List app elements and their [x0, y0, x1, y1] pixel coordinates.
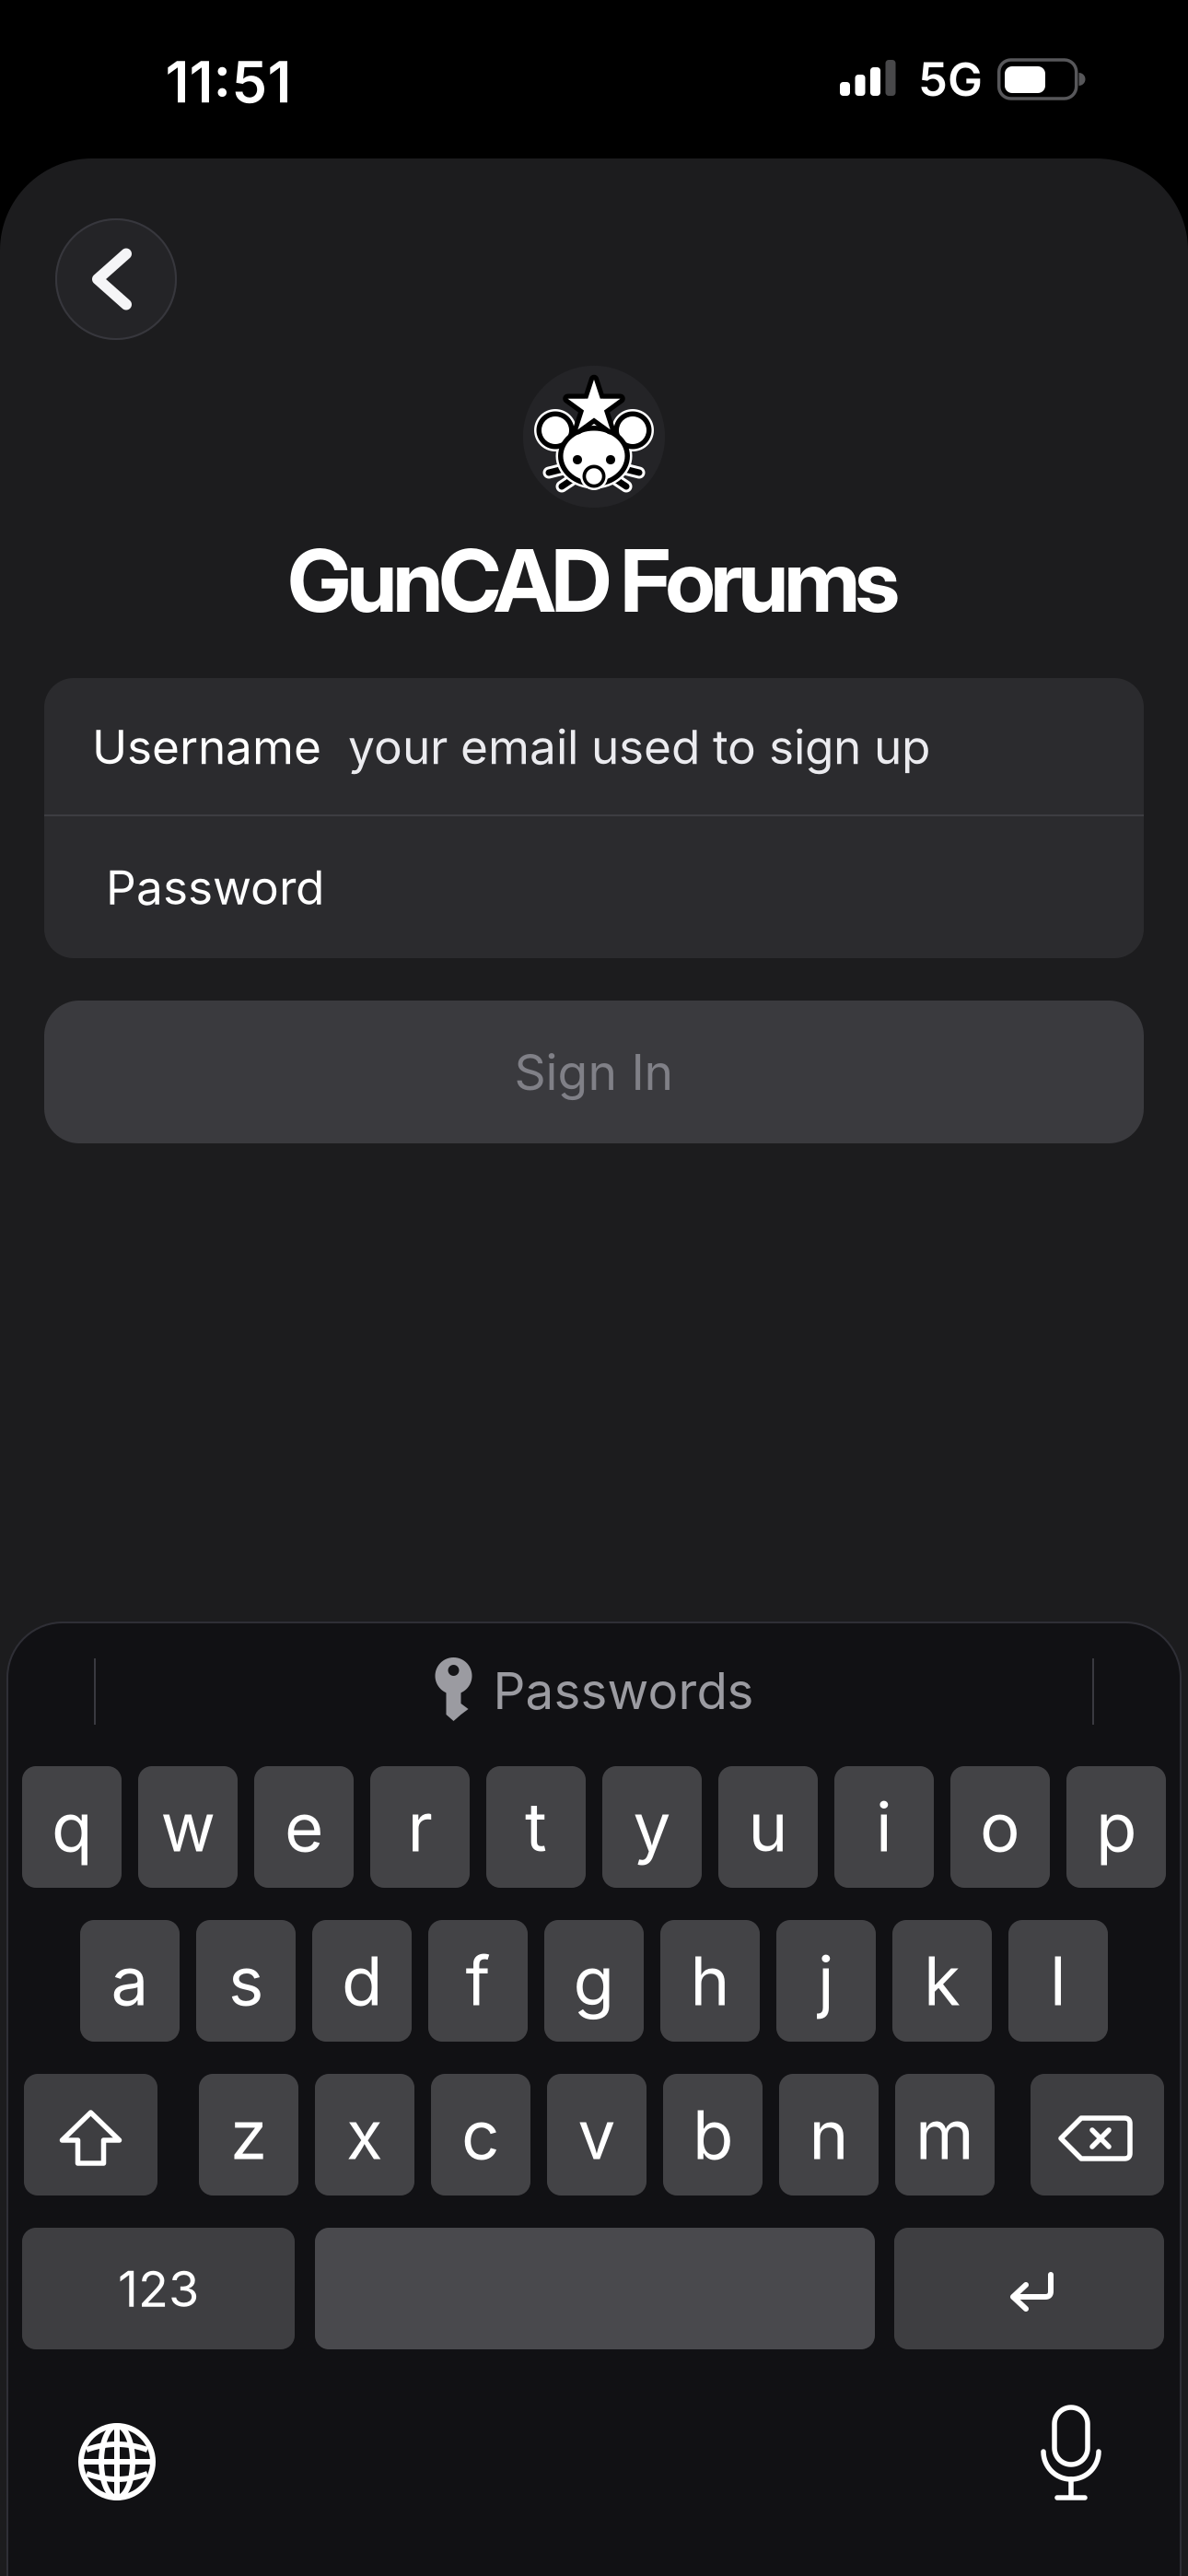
- staticText: your email used to sign up: [348, 718, 930, 775]
- staticText: Password: [106, 859, 324, 916]
- button[interactable]: o: [950, 1766, 1050, 1888]
- button[interactable]: d: [312, 1920, 412, 2042]
- button[interactable]: r: [370, 1766, 470, 1888]
- button[interactable]: e: [254, 1766, 354, 1888]
- staticText: y: [633, 1786, 671, 1867]
- button[interactable]: s: [196, 1920, 296, 2042]
- button[interactable]: Back: [55, 218, 177, 340]
- staticText: j: [818, 1940, 834, 2021]
- button[interactable]: a: [80, 1920, 180, 2042]
- button[interactable]: c: [431, 2074, 530, 2195]
- button[interactable]: j: [776, 1920, 876, 2042]
- button[interactable]: y: [602, 1766, 702, 1888]
- staticText: b: [693, 2094, 733, 2175]
- button[interactable]: m: [895, 2074, 995, 2195]
- staticText: u: [748, 1786, 788, 1867]
- staticText: n: [809, 2094, 849, 2175]
- button[interactable]: q: [22, 1766, 122, 1888]
- button[interactable]: Sign In: [44, 1001, 1144, 1143]
- button[interactable]: Passwords: [434, 1657, 754, 1724]
- button[interactable]: u: [718, 1766, 818, 1888]
- button[interactable]: i: [834, 1766, 934, 1888]
- button[interactable]: x: [315, 2074, 414, 2195]
- staticText: Sign In: [514, 1042, 674, 1102]
- button[interactable]: h: [660, 1920, 760, 2042]
- staticText: p: [1096, 1786, 1136, 1867]
- button[interactable]: Return: [894, 2228, 1164, 2349]
- button[interactable]: k: [892, 1920, 992, 2042]
- button[interactable]: Dictate: [1016, 2403, 1126, 2513]
- staticText: Username: [92, 718, 321, 775]
- staticText: 123: [118, 2258, 199, 2319]
- staticText: o: [980, 1786, 1020, 1867]
- button[interactable]: n: [779, 2074, 879, 2195]
- staticText: 11:51: [165, 48, 291, 116]
- staticText: r: [408, 1786, 432, 1867]
- button[interactable]: b: [663, 2074, 763, 2195]
- staticText: t: [525, 1786, 547, 1867]
- staticText: l: [1050, 1940, 1066, 2021]
- staticText: m: [915, 2094, 974, 2175]
- staticText: i: [876, 1786, 892, 1867]
- button[interactable]: v: [547, 2074, 646, 2195]
- button[interactable]: 123: [22, 2228, 295, 2349]
- button[interactable]: p: [1066, 1766, 1166, 1888]
- button[interactable]: l: [1008, 1920, 1108, 2042]
- button[interactable]: f: [428, 1920, 528, 2042]
- staticText: q: [52, 1786, 92, 1867]
- button[interactable]: Shift: [24, 2074, 157, 2195]
- staticText: Passwords: [493, 1660, 754, 1721]
- staticText: GunCAD Forums: [288, 528, 900, 632]
- staticText: k: [924, 1940, 961, 2021]
- button[interactable]: t: [486, 1766, 586, 1888]
- staticText: c: [461, 2094, 500, 2175]
- button[interactable]: Delete: [1031, 2074, 1164, 2195]
- button[interactable]: Username: [44, 678, 1144, 815]
- staticText: s: [228, 1940, 263, 2021]
- staticText: w: [161, 1786, 215, 1867]
- staticText: 5G: [918, 51, 983, 107]
- button[interactable]: Next keyboard: [62, 2406, 172, 2517]
- staticText: x: [346, 2094, 383, 2175]
- staticText: d: [342, 1940, 382, 2021]
- button[interactable]: Password: [44, 816, 1144, 957]
- staticText: v: [578, 2094, 616, 2175]
- staticText: g: [573, 1940, 615, 2021]
- button[interactable]: w: [138, 1766, 238, 1888]
- button[interactable]: z: [199, 2074, 298, 2195]
- staticText: z: [230, 2094, 267, 2175]
- staticText: f: [466, 1940, 490, 2021]
- staticText: h: [690, 1940, 730, 2021]
- button[interactable]: g: [544, 1920, 644, 2042]
- staticText: e: [285, 1786, 323, 1867]
- staticText: a: [111, 1940, 149, 2021]
